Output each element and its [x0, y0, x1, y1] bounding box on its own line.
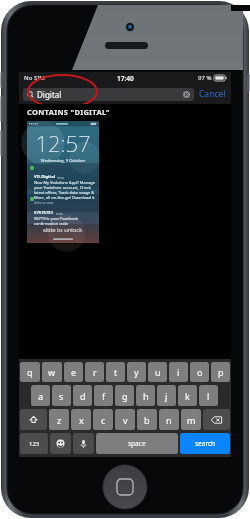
staticText: Digital [37, 89, 62, 100]
staticText: 96779 is your Facebook confirmation code [34, 216, 96, 226]
button[interactable]: w [42, 362, 62, 382]
button[interactable]: Digital [23, 88, 194, 101]
staticText: i [177, 366, 180, 378]
staticText: g [122, 390, 128, 402]
staticText: d [80, 390, 86, 402]
button[interactable]: g [115, 385, 134, 406]
staticText: search [195, 439, 216, 448]
button[interactable]: k [178, 385, 197, 406]
button[interactable]: search [180, 433, 230, 454]
staticText: u [155, 366, 161, 378]
staticText: slide to unlock [43, 226, 83, 234]
staticText: p [218, 366, 224, 378]
button[interactable]: Shift [20, 409, 47, 430]
staticText: 17:40 [117, 74, 134, 83]
staticText: a [38, 390, 44, 402]
staticText: w [48, 366, 56, 378]
button[interactable]: c [93, 409, 113, 430]
button[interactable]: y [127, 362, 146, 382]
staticText: h [143, 390, 149, 402]
staticText: No SIM [24, 74, 45, 82]
button[interactable]: b [137, 409, 157, 430]
staticText: space [128, 439, 146, 448]
staticText: t [114, 366, 118, 378]
button[interactable]: Dictation [73, 433, 94, 454]
button[interactable]: Backspace [203, 409, 230, 430]
button[interactable]: t [106, 362, 125, 382]
button[interactable]: m [181, 409, 201, 430]
button[interactable]: i [169, 362, 188, 382]
staticText: y [134, 366, 139, 378]
staticText: b [144, 414, 150, 426]
staticText: VD-Digital [34, 174, 55, 180]
button[interactable]: q [20, 362, 40, 382]
staticText: k [185, 390, 190, 402]
button[interactable]: o [190, 362, 209, 382]
staticText: slide to view [34, 200, 54, 205]
button[interactable]: s [52, 385, 71, 406]
button[interactable]: l [199, 385, 218, 406]
button[interactable]: r [85, 362, 104, 382]
staticText: Cancel [199, 88, 226, 100]
staticText: o [197, 366, 203, 378]
staticText: q [27, 366, 33, 378]
staticText: f [102, 390, 106, 402]
button[interactable]: space [96, 433, 178, 454]
button[interactable]: 123 [20, 433, 48, 454]
button[interactable]: d [73, 385, 92, 406]
staticText: x [79, 414, 84, 426]
staticText: 97 % [198, 74, 212, 82]
staticText: n [166, 414, 172, 426]
staticText: Wednesday, 9 October [27, 158, 99, 164]
button[interactable]: e [64, 362, 83, 382]
button[interactable]: Emoji keyboard [50, 433, 71, 454]
staticText: r [93, 366, 97, 378]
button[interactable]: v [115, 409, 135, 430]
staticText: s [59, 390, 64, 402]
staticText: c [101, 414, 106, 426]
button[interactable]: h [136, 385, 155, 406]
staticText: v [123, 414, 128, 426]
button[interactable]: 12:57 [27, 121, 99, 243]
staticText: m [187, 414, 196, 426]
button[interactable]: a [31, 385, 50, 406]
button[interactable]: x [71, 409, 91, 430]
staticText: 12:57 [27, 128, 99, 158]
staticText: now [57, 175, 65, 180]
staticText: now [56, 211, 64, 216]
button[interactable]: u [148, 362, 167, 382]
staticText: l [207, 390, 210, 402]
button[interactable]: j [157, 385, 176, 406]
button[interactable]: Clear search [183, 91, 190, 98]
staticText: j [165, 390, 168, 402]
staticText: z [57, 414, 62, 426]
button[interactable]: p [211, 362, 230, 382]
button[interactable]: f [94, 385, 113, 406]
staticText: 57575751 [34, 210, 54, 216]
staticText: 123 [29, 440, 40, 448]
staticText: CONTAINS "DIGITAL" [27, 107, 110, 117]
button[interactable]: n [159, 409, 179, 430]
staticText: e [71, 366, 77, 378]
button[interactable]: Cancel [198, 86, 227, 102]
staticText: New My Vodafone App!! Manage your Vodafo… [34, 180, 96, 200]
button[interactable]: z [49, 409, 69, 430]
